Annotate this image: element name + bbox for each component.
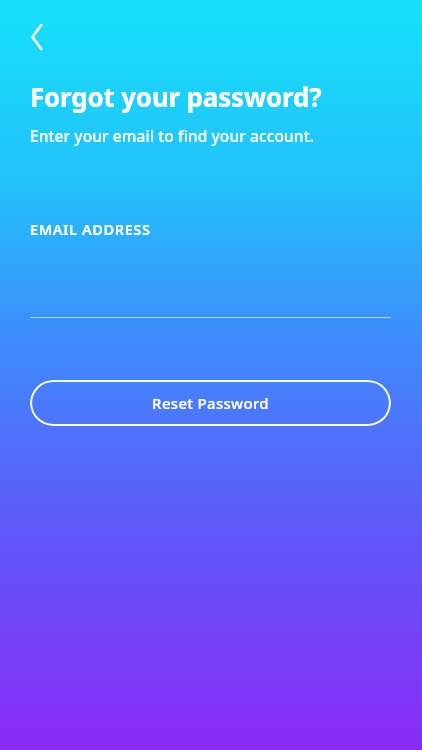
staticText: EMAIL ADDRESS xyxy=(30,219,151,239)
staticText: Enter your email to find your account. xyxy=(30,125,314,146)
staticText: Reset Password xyxy=(152,393,269,413)
button[interactable]: Reset Password xyxy=(30,380,391,426)
button[interactable]: Back xyxy=(14,12,64,62)
staticText: Forgot your password? xyxy=(30,79,322,114)
